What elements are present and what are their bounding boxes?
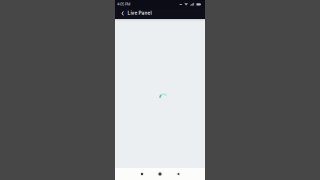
button[interactable]: Back bbox=[169, 168, 187, 180]
staticText: Live Panel bbox=[127, 10, 151, 16]
staticText: 4:05 PM bbox=[117, 2, 130, 6]
button[interactable]: Recent apps bbox=[133, 168, 151, 180]
button[interactable]: Back bbox=[119, 9, 126, 19]
button[interactable]: Home bbox=[151, 168, 169, 180]
